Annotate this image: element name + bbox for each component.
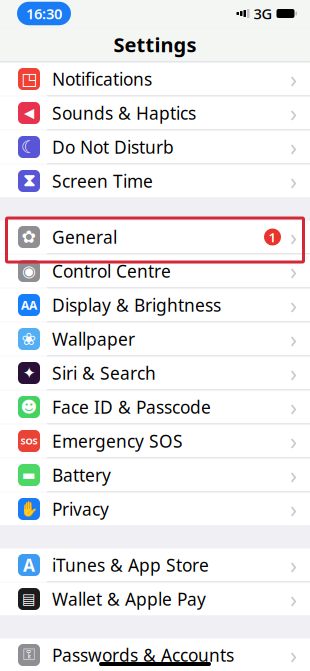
staticText: Battery <box>52 463 111 486</box>
button[interactable]: ✦ <box>0 356 310 389</box>
button[interactable]: ⧗ <box>0 164 310 197</box>
staticText: AA <box>21 297 37 313</box>
staticText: ◉ <box>22 262 36 280</box>
staticText: › <box>290 290 297 320</box>
staticText: › <box>290 392 297 422</box>
staticText: ✋ <box>20 501 38 517</box>
button[interactable]: ✿ <box>0 220 310 253</box>
staticText: Do Not Disturb <box>52 135 174 158</box>
staticText: ▬ <box>22 467 36 483</box>
button[interactable]: ▤ <box>0 582 310 615</box>
staticText: › <box>290 426 297 456</box>
staticText: Control Centre <box>52 259 171 282</box>
staticText: › <box>290 256 297 286</box>
staticText: ✦ <box>22 364 35 382</box>
staticText: Screen Time <box>52 169 153 192</box>
staticText: › <box>290 584 297 614</box>
staticText: ☻ <box>20 398 37 416</box>
staticText: ◀ <box>24 105 34 120</box>
staticText: › <box>290 132 297 162</box>
staticText: Wallpaper <box>52 327 135 350</box>
staticText: Face ID & Passcode <box>52 395 211 418</box>
staticText: › <box>290 550 297 580</box>
staticText: SOS <box>20 435 37 447</box>
staticText: ❀ <box>21 329 36 349</box>
button[interactable]: ▬ <box>0 458 310 491</box>
staticText: › <box>290 640 297 670</box>
staticText: › <box>290 166 297 196</box>
staticText: ☾ <box>21 137 37 157</box>
staticText: ◳ <box>21 69 37 89</box>
button[interactable]: ◳ <box>0 62 310 95</box>
staticText: General <box>52 225 117 248</box>
staticText: ▤ <box>22 591 36 607</box>
button[interactable]: ❀ <box>0 322 310 355</box>
button[interactable]: ⚿ <box>0 638 310 671</box>
staticText: Settings <box>113 31 196 58</box>
staticText: Emergency SOS <box>52 429 183 452</box>
staticText: ⚿ <box>23 647 35 663</box>
staticText: › <box>290 64 297 94</box>
staticText: 16:30 <box>26 4 62 23</box>
button[interactable]: A <box>0 548 310 581</box>
button[interactable]: AA <box>0 288 310 321</box>
button[interactable]: SOS <box>0 424 310 457</box>
staticText: › <box>290 98 297 128</box>
staticText: Display & Brightness <box>52 293 221 316</box>
staticText: 3G <box>253 4 272 23</box>
staticText: ⧗ <box>23 172 35 189</box>
staticText: Siri & Search <box>52 361 156 384</box>
button[interactable]: ✋ <box>0 492 310 525</box>
staticText: Passwords & Accounts <box>52 643 234 666</box>
staticText: 1 <box>268 228 276 246</box>
button[interactable]: ☾ <box>0 130 310 163</box>
staticText: › <box>290 222 297 252</box>
button[interactable]: ◀ <box>0 96 310 129</box>
button[interactable]: ◉ <box>0 254 310 287</box>
staticText: › <box>290 460 297 490</box>
staticText: iTunes & App Store <box>52 553 209 576</box>
staticText: Privacy <box>52 497 109 520</box>
staticText: ✿ <box>21 227 36 247</box>
staticText: › <box>290 358 297 388</box>
staticText: A <box>23 553 35 576</box>
staticText: Notifications <box>52 67 152 90</box>
staticText: Wallet & Apple Pay <box>52 587 206 610</box>
button[interactable]: ☻ <box>0 390 310 423</box>
staticText: › <box>290 324 297 354</box>
staticText: Sounds & Haptics <box>52 101 196 124</box>
staticText: › <box>290 494 297 524</box>
